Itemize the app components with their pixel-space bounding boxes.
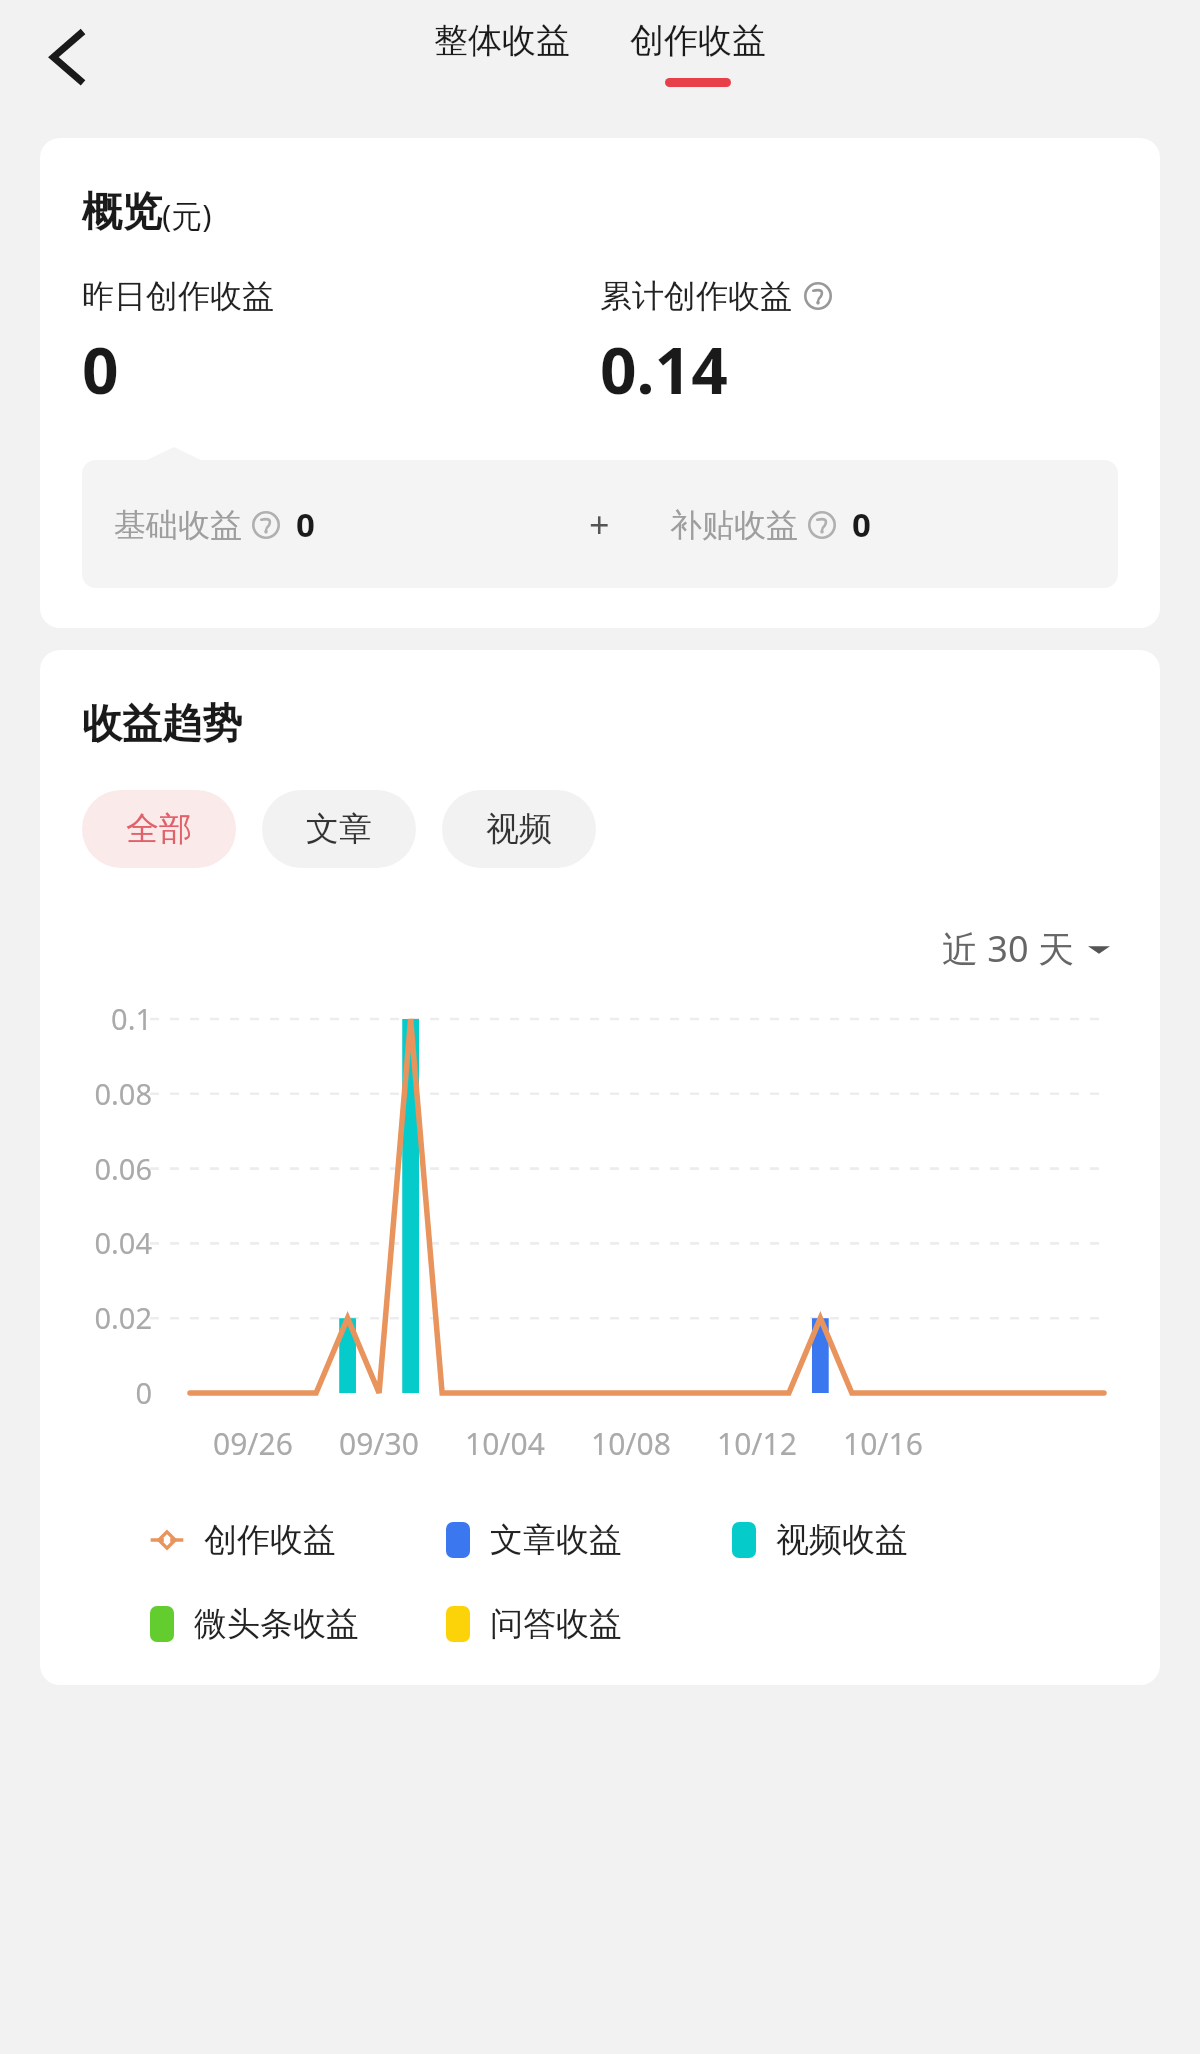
staticText: 基础收益 <box>114 505 242 545</box>
staticText: 0.1 <box>40 999 152 1038</box>
staticText: 09/26 <box>213 1423 293 1464</box>
staticText: 创作收益 <box>630 19 766 62</box>
staticText: 0.04 <box>40 1223 152 1262</box>
staticText: 昨日创作收益 <box>82 276 274 316</box>
staticText: 整体收益 <box>434 19 570 62</box>
staticText: 视频收益 <box>776 1519 908 1561</box>
staticText: 10/08 <box>591 1423 671 1464</box>
staticText: 视频 <box>486 808 552 850</box>
button[interactable]: 全部 <box>82 790 236 868</box>
staticText: 0 <box>852 502 871 547</box>
staticText: 0.02 <box>40 1298 152 1337</box>
staticText: 0.14 <box>600 326 728 413</box>
button[interactable]: 视频 <box>442 790 596 868</box>
staticText: 近 30 天 <box>942 924 1074 973</box>
button[interactable]: 补贴收益 <box>670 502 871 547</box>
staticText: 09/30 <box>339 1423 419 1464</box>
button[interactable]: 近 30 天 <box>936 918 1116 979</box>
staticText: 概览 <box>82 186 162 236</box>
button[interactable]: 视频收益 <box>732 1519 992 1561</box>
button[interactable]: 创作收益 <box>620 15 776 91</box>
staticText: 10/12 <box>717 1423 797 1464</box>
button[interactable]: 基础收益 <box>114 502 315 547</box>
staticText: 全部 <box>126 808 192 850</box>
staticText: 10/04 <box>465 1423 545 1464</box>
button[interactable]: 昨日创作收益 <box>82 276 600 413</box>
button[interactable]: 微头条收益 <box>150 1603 446 1645</box>
staticText: 0 <box>40 1373 152 1412</box>
staticText: 0 <box>296 502 315 547</box>
staticText: 文章 <box>306 808 372 850</box>
staticText: 0.08 <box>40 1074 152 1113</box>
staticText: 文章收益 <box>490 1519 622 1561</box>
button[interactable]: 文章 <box>262 790 416 868</box>
button[interactable]: Back <box>12 14 102 104</box>
staticText: 10/16 <box>843 1423 923 1464</box>
staticText: 补贴收益 <box>670 505 798 545</box>
button[interactable]: 创作收益 <box>150 1519 446 1561</box>
button[interactable]: 问答收益 <box>446 1603 732 1645</box>
staticText: 0.06 <box>40 1149 152 1188</box>
staticText: + <box>589 500 610 549</box>
staticText: 0 <box>82 326 119 413</box>
button[interactable]: 累计创作收益 <box>600 276 1118 413</box>
button[interactable]: 文章收益 <box>446 1519 732 1561</box>
staticText: (元) <box>162 194 212 236</box>
staticText: 累计创作收益 <box>600 276 792 316</box>
staticText: 创作收益 <box>204 1519 336 1561</box>
staticText: 微头条收益 <box>194 1603 359 1645</box>
staticText: 问答收益 <box>490 1603 622 1645</box>
staticText: 收益趋势 <box>82 698 242 748</box>
button[interactable]: 整体收益 <box>424 15 580 82</box>
